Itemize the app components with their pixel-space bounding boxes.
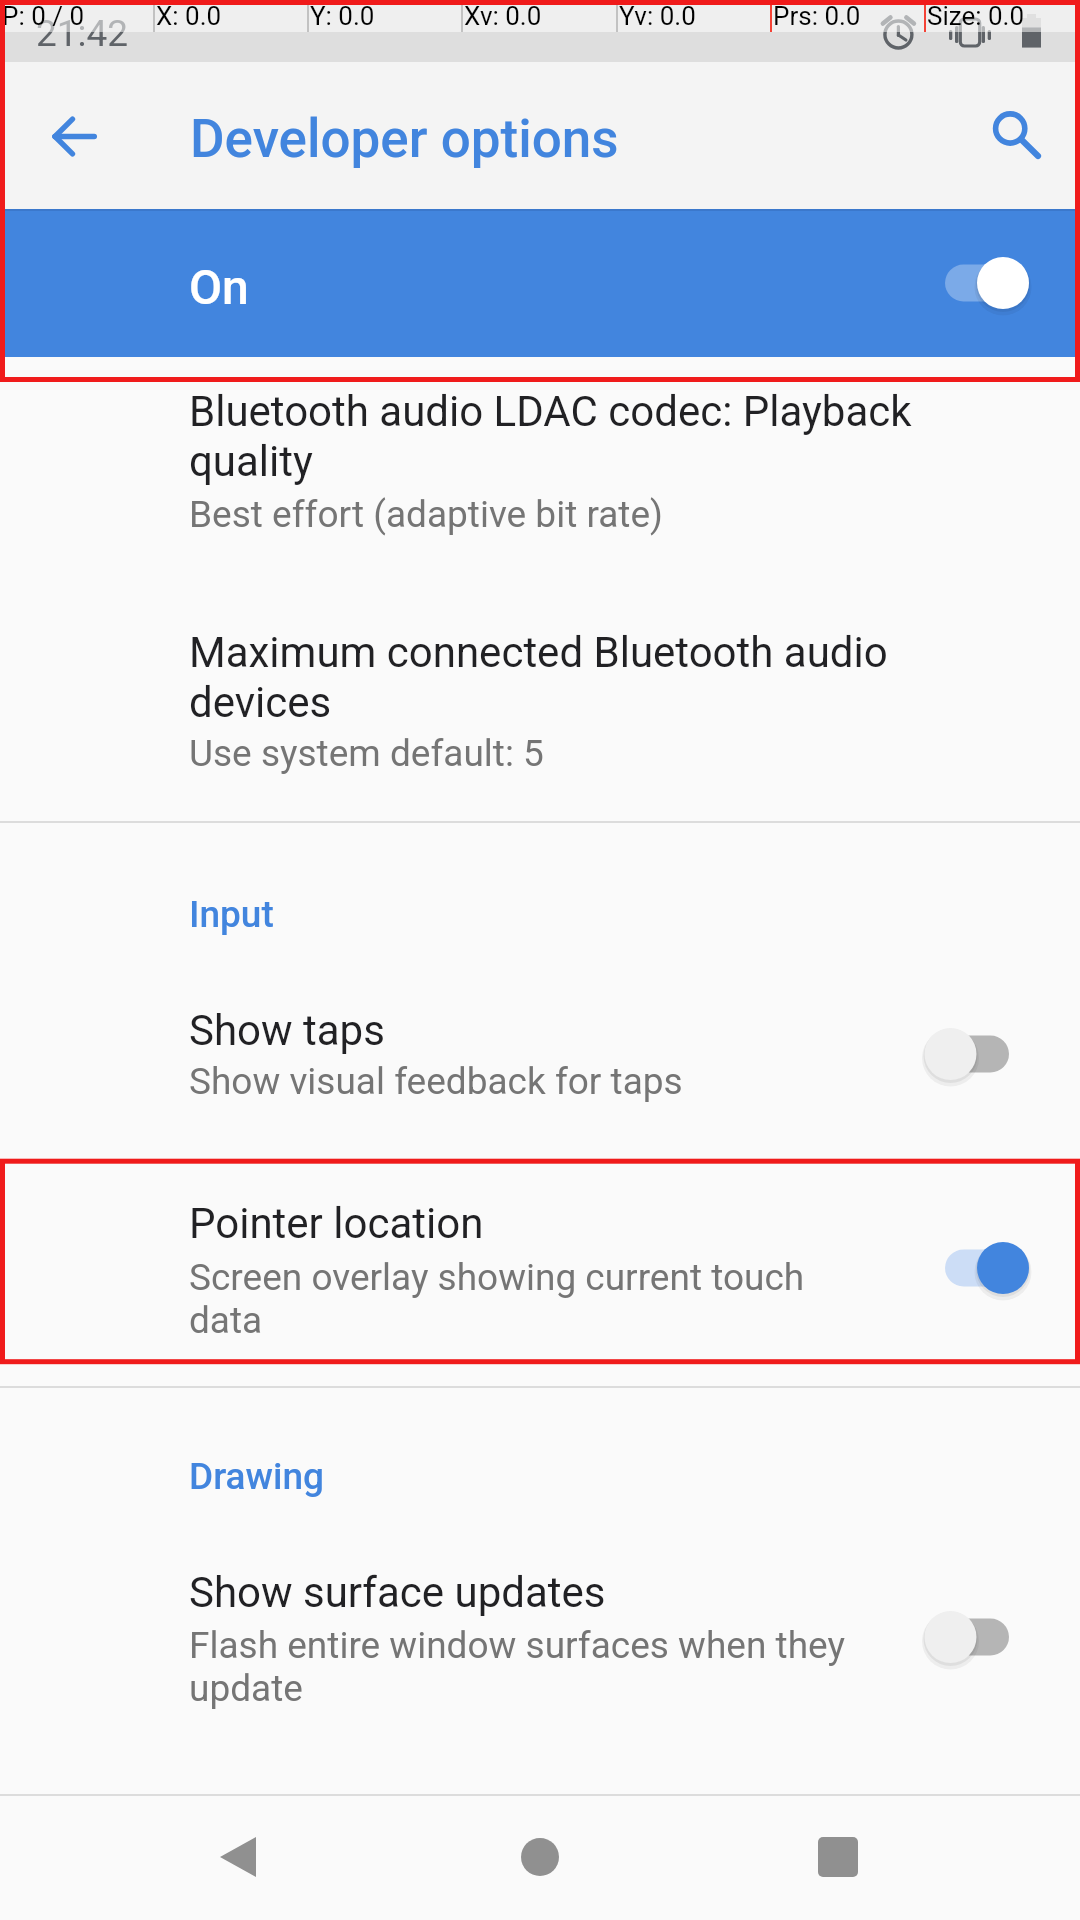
staticText: Input xyxy=(189,893,274,936)
staticText: P: 0 / 0 xyxy=(2,1,84,31)
staticText: Yv: 0.0 xyxy=(619,1,696,31)
staticText: On xyxy=(189,259,249,315)
staticText: Y: 0.0 xyxy=(310,1,375,31)
staticText: Pointer location xyxy=(189,1199,849,1248)
button[interactable]: Toggle xyxy=(900,1595,1060,1679)
button[interactable]: Home xyxy=(480,1797,600,1917)
staticText: Bluetooth audio LDAC codec: Playback qua… xyxy=(189,387,989,486)
button[interactable]: Maximum connected Bluetooth audio device… xyxy=(0,600,1080,818)
staticText: Use system default: 5 xyxy=(189,732,949,775)
button[interactable]: Toggle xyxy=(900,1012,1060,1096)
staticText: Xv: 0.0 xyxy=(464,1,542,31)
staticText: Screen overlay showing current touch dat… xyxy=(189,1256,849,1342)
staticText: Show visual feedback for taps xyxy=(189,1060,889,1103)
button[interactable]: Recent apps xyxy=(778,1797,898,1917)
button[interactable]: Show taps xyxy=(0,975,1080,1155)
staticText: Show taps xyxy=(189,1006,889,1055)
staticText: Best effort (adaptive bit rate) xyxy=(189,493,989,536)
staticText: Show surface updates xyxy=(189,1568,889,1617)
staticText: Flash entire window surfaces when they u… xyxy=(189,1624,889,1710)
staticText: Size: 0.0 xyxy=(927,1,1025,31)
staticText: Maximum connected Bluetooth audio device… xyxy=(189,628,949,727)
button[interactable]: Toggle xyxy=(900,1226,1060,1310)
staticText: Prs: 0.0 xyxy=(773,1,861,31)
staticText: Developer options xyxy=(190,108,619,170)
button[interactable]: Pointer location xyxy=(0,1162,1080,1362)
staticText: X: 0.0 xyxy=(156,1,222,31)
button[interactable]: On xyxy=(0,209,1080,357)
staticText: Drawing xyxy=(189,1455,324,1498)
button[interactable]: Back xyxy=(178,1797,298,1917)
staticText: 21:42 xyxy=(36,12,129,55)
button[interactable]: Show surface updates xyxy=(0,1535,1080,1745)
button[interactable]: Bluetooth audio LDAC codec: Playback qua… xyxy=(0,360,1080,600)
button[interactable]: Toggle xyxy=(900,241,1060,325)
button[interactable]: Search xyxy=(963,89,1057,183)
button[interactable]: Navigate up xyxy=(27,89,121,183)
